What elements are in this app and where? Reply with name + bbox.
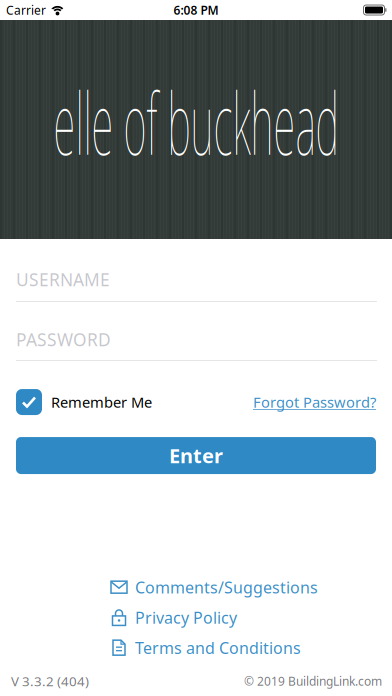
staticText: elle of buckhead bbox=[53, 95, 338, 148]
button[interactable]: Remember Me bbox=[16, 389, 152, 415]
button[interactable]: Terms and Conditions bbox=[110, 637, 301, 658]
staticText: Terms and Conditions bbox=[135, 637, 301, 658]
button[interactable]: Username bbox=[0, 239, 392, 302]
staticText: 6:08 PM bbox=[173, 2, 218, 18]
staticText: PASSWORD bbox=[16, 328, 111, 351]
staticText: V 3.3.2 (404) bbox=[11, 672, 89, 690]
button[interactable]: Privacy Policy bbox=[110, 607, 237, 628]
button[interactable]: Password bbox=[0, 302, 392, 361]
staticText: USERNAME bbox=[16, 268, 110, 291]
staticText: Privacy Policy bbox=[135, 607, 237, 628]
staticText: Comments/Suggestions bbox=[135, 576, 318, 598]
staticText: Remember Me bbox=[51, 392, 152, 412]
staticText: Carrier bbox=[6, 2, 46, 18]
staticText: Forgot Password? bbox=[253, 392, 376, 412]
staticText: Enter bbox=[169, 442, 223, 469]
button[interactable]: Forgot Password? bbox=[253, 392, 376, 412]
button[interactable]: Enter bbox=[16, 437, 376, 474]
staticText: © 2019 BuildingLink.com bbox=[244, 673, 382, 689]
button[interactable]: Comments/Suggestions bbox=[110, 576, 318, 598]
